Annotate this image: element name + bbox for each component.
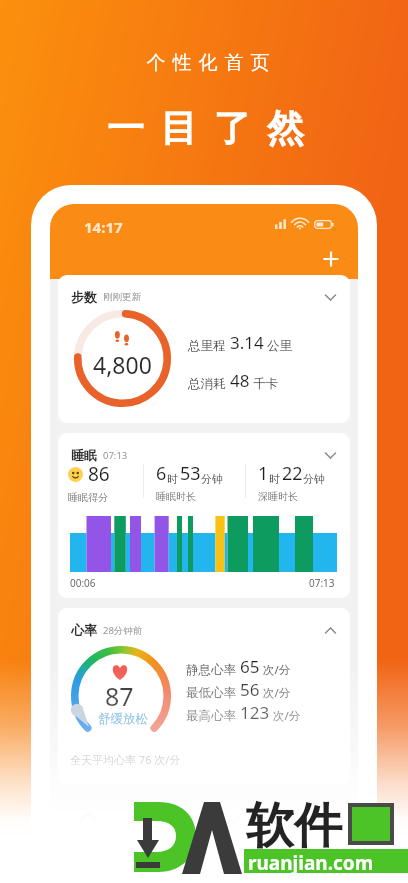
staticText: 千卡 <box>253 376 278 392</box>
button[interactable]: 睡眠 <box>71 441 338 469</box>
staticText: 刚刚更新 <box>103 291 141 303</box>
staticText: 我的 <box>311 834 329 845</box>
staticText: 53 <box>180 461 201 486</box>
staticText: 公里 <box>267 338 292 354</box>
staticText: 14:17 <box>84 217 123 237</box>
staticText: 睡眠时长 <box>156 490 196 503</box>
staticText: 65 <box>240 655 260 678</box>
staticText: 总里程 <box>188 338 226 354</box>
staticText: 最低心率 <box>186 685 236 701</box>
button[interactable]: 心率 <box>71 616 338 644</box>
staticText: 时 <box>167 472 178 486</box>
staticText: ruanjian.com <box>248 850 374 876</box>
staticText: 总消耗 <box>188 376 226 392</box>
staticText: 4,800 <box>93 349 152 380</box>
staticText: 最高心率 <box>186 708 236 724</box>
staticText: 一目了然 <box>107 105 321 152</box>
button[interactable]: Add <box>318 246 344 272</box>
staticText: 静息心率 <box>186 662 236 678</box>
staticText: 07:13 <box>309 576 335 590</box>
staticText: 全天平均心率 76 次/分 <box>70 752 181 767</box>
staticText: 个性化首页 <box>143 51 273 75</box>
staticText: 次/分 <box>263 662 291 678</box>
staticText: 睡眠 <box>71 447 97 463</box>
staticText: 步数 <box>71 289 97 305</box>
staticText: 07:13 <box>103 449 128 462</box>
staticText: 1 <box>258 461 269 486</box>
staticText: 软件 <box>246 796 342 856</box>
staticText: 深睡时长 <box>258 490 298 503</box>
staticText: 舒缓放松 <box>98 711 148 727</box>
staticText: 87 <box>105 679 134 713</box>
staticText: 次/分 <box>263 685 291 701</box>
staticText: 睡眠得分 <box>68 491 108 504</box>
staticText: 22 <box>282 461 303 486</box>
staticText: 56 <box>240 678 260 701</box>
button[interactable]: 运动 <box>127 800 204 854</box>
staticText: 分钟 <box>303 472 325 486</box>
button[interactable]: 发现 <box>204 800 281 854</box>
staticText: 次/分 <box>273 708 301 724</box>
staticText: 86 <box>88 461 110 487</box>
staticText: 时 <box>269 472 280 486</box>
staticText: 123 <box>240 701 270 724</box>
button[interactable]: 我的 <box>281 800 358 854</box>
staticText: 心率 <box>71 622 97 638</box>
staticText: 48 <box>230 369 250 392</box>
staticText: 3.14 <box>230 331 264 354</box>
staticText: 00:06 <box>70 576 96 590</box>
button[interactable]: 步数 <box>71 283 338 311</box>
staticText: 28分钟前 <box>103 624 143 637</box>
staticText: 6 <box>156 461 167 486</box>
staticText: 发现 <box>234 834 252 845</box>
staticText: 分钟 <box>201 472 223 486</box>
staticText: 运动 <box>157 834 175 845</box>
